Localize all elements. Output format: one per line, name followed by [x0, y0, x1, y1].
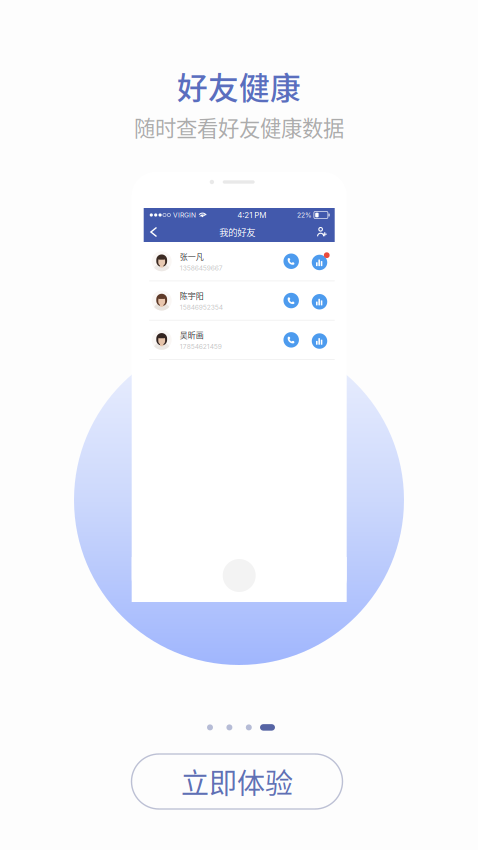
staticText: 张一凡	[180, 250, 204, 262]
button[interactable]: Back	[147, 222, 161, 242]
staticText: VIRGIN	[173, 211, 196, 219]
button[interactable]: Call 张一凡	[279, 249, 303, 273]
staticText: 好友健康	[177, 64, 301, 108]
staticText: 15846952354	[180, 303, 223, 311]
button[interactable]: Health data for 陈宇阳	[311, 291, 331, 311]
staticText: 随时查看好友健康数据	[134, 112, 344, 142]
button[interactable]: 立即体验	[131, 754, 342, 809]
staticText: 4:21 PM	[237, 210, 266, 220]
staticText: 吴昕画	[180, 329, 204, 341]
staticText: 立即体验	[181, 761, 293, 802]
staticText: 22%	[297, 211, 312, 219]
staticText: 13586459667	[180, 264, 223, 272]
button[interactable]: Add friend	[314, 222, 330, 242]
staticText: 我的好友	[219, 225, 255, 239]
staticText: 陈宇阳	[180, 290, 204, 301]
button[interactable]: Health data for 吴昕画	[311, 330, 331, 350]
button[interactable]: Call 吴昕画	[279, 328, 303, 352]
staticText: 17854621459	[180, 343, 222, 351]
button[interactable]: Call 陈宇阳	[279, 289, 303, 313]
button[interactable]: Health data for 张一凡	[311, 251, 331, 271]
